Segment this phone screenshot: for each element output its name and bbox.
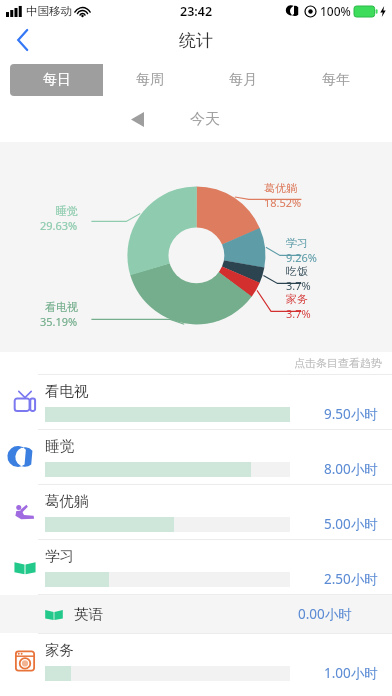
staticText: 家务: [45, 641, 74, 659]
staticText: 29.63%: [40, 218, 78, 233]
button[interactable]: 家务: [0, 633, 392, 688]
button[interactable]: Back: [6, 23, 40, 57]
staticText: 今天: [190, 110, 220, 129]
staticText: 吃饭: [286, 264, 308, 278]
button[interactable]: 每月: [196, 64, 289, 96]
staticText: 学习: [286, 236, 308, 250]
staticText: 点击条目查看趋势: [294, 356, 382, 370]
button[interactable]: 英语: [0, 594, 392, 633]
staticText: 3.7%: [286, 278, 311, 293]
staticText: 看电视: [45, 300, 78, 314]
button[interactable]: 每年: [289, 64, 382, 96]
staticText: 每周: [136, 71, 164, 89]
staticText: 睡觉: [45, 437, 74, 455]
staticText: 学习: [45, 547, 74, 565]
button[interactable]: 每日: [10, 64, 103, 96]
staticText: 中国移动: [26, 4, 72, 18]
button[interactable]: Previous day: [122, 107, 152, 131]
staticText: 睡觉: [56, 204, 78, 218]
staticText: 每日: [43, 71, 71, 89]
staticText: 9.50小时: [324, 405, 378, 423]
staticText: 8.00小时: [324, 460, 378, 478]
button[interactable]: 葛优躺: [0, 484, 392, 539]
staticText: 看电视: [45, 382, 89, 400]
staticText: 每月: [229, 71, 257, 89]
staticText: 2.50小时: [324, 570, 378, 588]
staticText: 5.00小时: [324, 515, 378, 533]
staticText: 每年: [322, 71, 350, 89]
button[interactable]: 学习: [0, 539, 392, 594]
staticText: 18.52%: [264, 195, 302, 210]
staticText: 23:42: [180, 3, 213, 20]
button[interactable]: 每周: [103, 64, 196, 96]
staticText: 葛优躺: [264, 181, 297, 195]
staticText: 葛优躺: [45, 492, 89, 510]
staticText: 9.26%: [286, 250, 317, 265]
staticText: 3.7%: [286, 306, 311, 321]
staticText: 100%: [320, 3, 351, 19]
button[interactable]: 睡觉: [0, 429, 392, 484]
staticText: 家务: [286, 292, 308, 306]
staticText: 英语: [74, 605, 103, 623]
staticText: 统计: [179, 30, 213, 51]
button[interactable]: 看电视: [0, 374, 392, 429]
staticText: 0.00小时: [298, 605, 352, 623]
staticText: 1.00小时: [324, 664, 378, 682]
staticText: 35.19%: [40, 314, 78, 329]
